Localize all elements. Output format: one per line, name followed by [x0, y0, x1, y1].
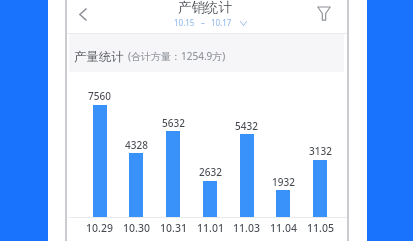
staticText: (合计方量：1254.9方) — [128, 49, 226, 63]
button[interactable]: 10.15 – 10.17 — [174, 17, 247, 28]
staticText: 11.03 — [233, 221, 260, 235]
button[interactable]: Back — [69, 1, 96, 28]
staticText: 11.05 — [307, 221, 334, 235]
staticText: 7560 — [88, 89, 111, 103]
staticText: 4328 — [125, 138, 148, 152]
staticText: 1932 — [272, 175, 295, 189]
staticText: 10.15 – 10.17 — [174, 17, 232, 28]
staticText: 11.04 — [270, 221, 297, 235]
staticText: 5432 — [235, 119, 258, 133]
staticText: 产量统计 — [74, 49, 124, 65]
staticText: 10.31 — [160, 221, 187, 235]
staticText: 11.01 — [197, 221, 224, 235]
staticText: 3132 — [309, 144, 332, 158]
staticText: 10.30 — [123, 221, 150, 235]
staticText: 10.29 — [86, 221, 113, 235]
button[interactable]: Filter — [311, 0, 337, 26]
staticText: 5632 — [162, 116, 185, 130]
staticText: 产销统计 — [178, 0, 232, 16]
staticText: 2632 — [199, 165, 222, 179]
